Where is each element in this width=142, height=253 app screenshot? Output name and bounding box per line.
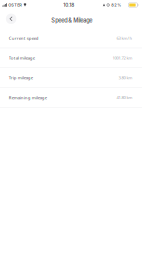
staticText: Total mileage: [9, 55, 35, 61]
staticText: 63 km/h: [117, 35, 133, 41]
staticText: 41.80 km: [117, 95, 133, 100]
staticText: Current speed: [9, 35, 39, 41]
staticText: 1001.72 km: [113, 55, 133, 61]
staticText: 10.18: [63, 2, 74, 8]
button[interactable]: Back: [6, 14, 16, 24]
staticText: Trip mileage: [9, 75, 33, 81]
button[interactable]: Remaining mileage: [0, 88, 142, 108]
staticText: Speed & Mileage: [51, 17, 92, 24]
staticText: 3.80 km: [119, 75, 133, 80]
button[interactable]: Trip mileage: [0, 68, 142, 88]
staticText: 82 %: [111, 3, 121, 7]
button[interactable]: Current speed: [0, 28, 142, 48]
staticText: Remaining mileage: [9, 95, 47, 100]
button[interactable]: Total mileage: [0, 48, 142, 68]
staticText: OSTER: [8, 3, 22, 7]
